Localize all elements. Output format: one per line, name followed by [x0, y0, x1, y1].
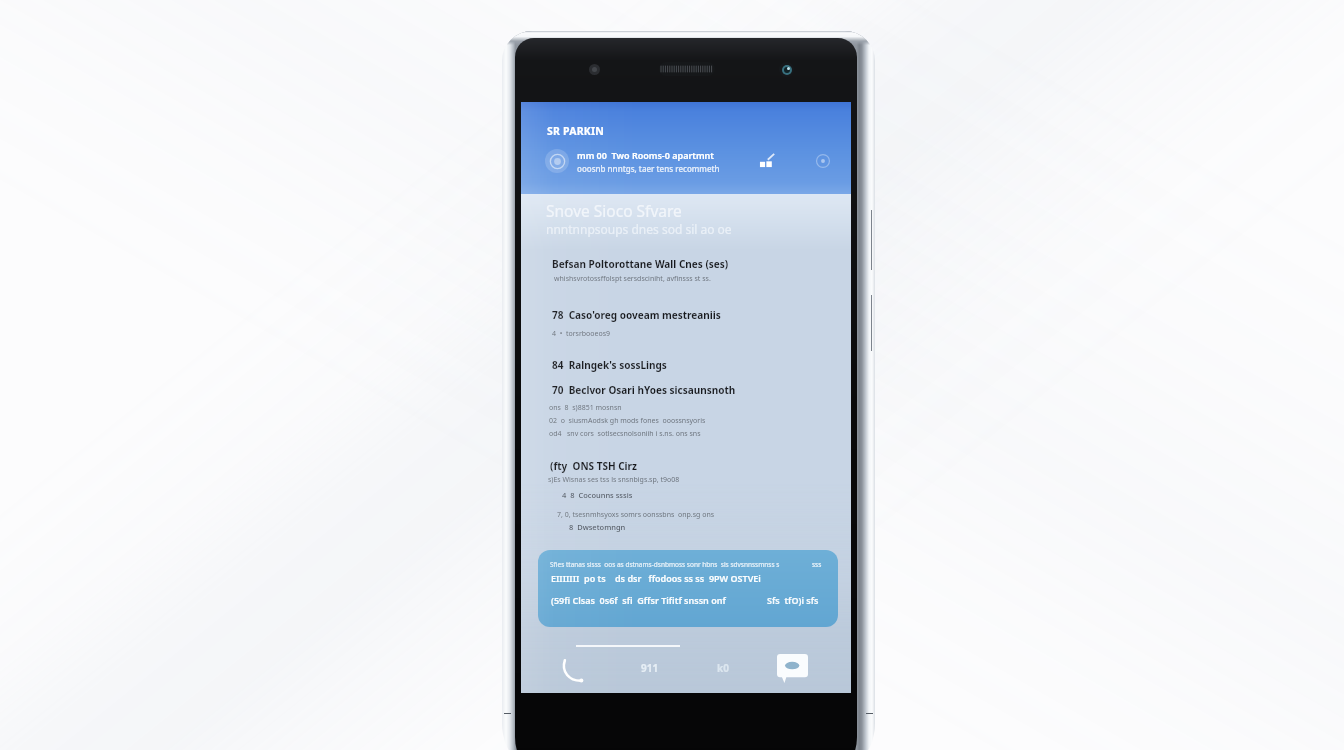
staticText: 911 — [641, 661, 659, 675]
staticText: Snove Sioco Sfvare — [546, 200, 682, 221]
staticText: sss — [812, 560, 822, 569]
staticText: 7, 0, tsesnmhsyoxs somrs oonssbns onp.sg… — [557, 510, 715, 520]
staticText: Sfs tfO)i sfs — [767, 594, 819, 606]
staticText: Sfies ttanas sisss oos as dstnams-dsnbmo… — [550, 560, 780, 569]
staticText: (59fi Clsas 0s6f sfi Gffsr Tifitf snssn … — [551, 594, 726, 606]
staticText: ons 8 s)8851 mosnsn — [549, 403, 622, 413]
button[interactable]: 911 — [634, 653, 666, 683]
staticText: ooosnb nnntgs, taer tens recommeth — [577, 163, 720, 174]
button[interactable]: Call — [555, 652, 591, 688]
button[interactable]: k0 — [707, 653, 739, 683]
staticText: Befsan Poltorottane Wall Cnes (ses) — [552, 257, 729, 271]
button[interactable]: Sfies ttanas sisss oos as dstnams-dsnbmo… — [538, 550, 838, 627]
staticText: nnntnnpsoups dnes sod sil ao oe — [546, 221, 732, 237]
button[interactable]: mm 00 Two Rooms-0 apartmnt — [541, 144, 741, 178]
button[interactable]: Share — [755, 149, 779, 173]
staticText: 78 Caso'oreg ooveam mestreaniis — [552, 308, 721, 322]
staticText: EIIIIIII po ts ds dsr ffodoos ss ss 9PW … — [551, 572, 761, 584]
staticText: od4 snv cors sotlsecsnolsoniih i s.ns. o… — [549, 429, 701, 439]
staticText: mm 00 Two Rooms-0 apartmnt — [577, 149, 714, 161]
staticText: (fty ONS TSH Cirz — [550, 459, 637, 473]
staticText: 4 8 Cocounns sssis — [562, 490, 633, 500]
button[interactable]: Messages — [771, 648, 813, 688]
staticText: s)Es Wisnas ses tss ls snsnbigs.sp, t9o0… — [548, 475, 680, 485]
staticText: 84 Ralngek's sossLings — [552, 358, 667, 372]
staticText: whishsvrotossffolspt sersdsciniht, avfin… — [554, 274, 711, 284]
staticText: 4 • torsrbooeos9 — [552, 329, 611, 339]
button[interactable]: More options — [811, 149, 835, 173]
staticText: SR PARKIN — [547, 124, 604, 138]
staticText: k0 — [717, 661, 729, 675]
staticText: 02 o siusmAodsk gh mods fones ooossnsyor… — [549, 416, 706, 426]
staticText: 70 Beclvor Osari hYoes sicsaunsnoth — [552, 383, 736, 397]
staticText: 8 Dwsetomngn — [569, 522, 626, 532]
